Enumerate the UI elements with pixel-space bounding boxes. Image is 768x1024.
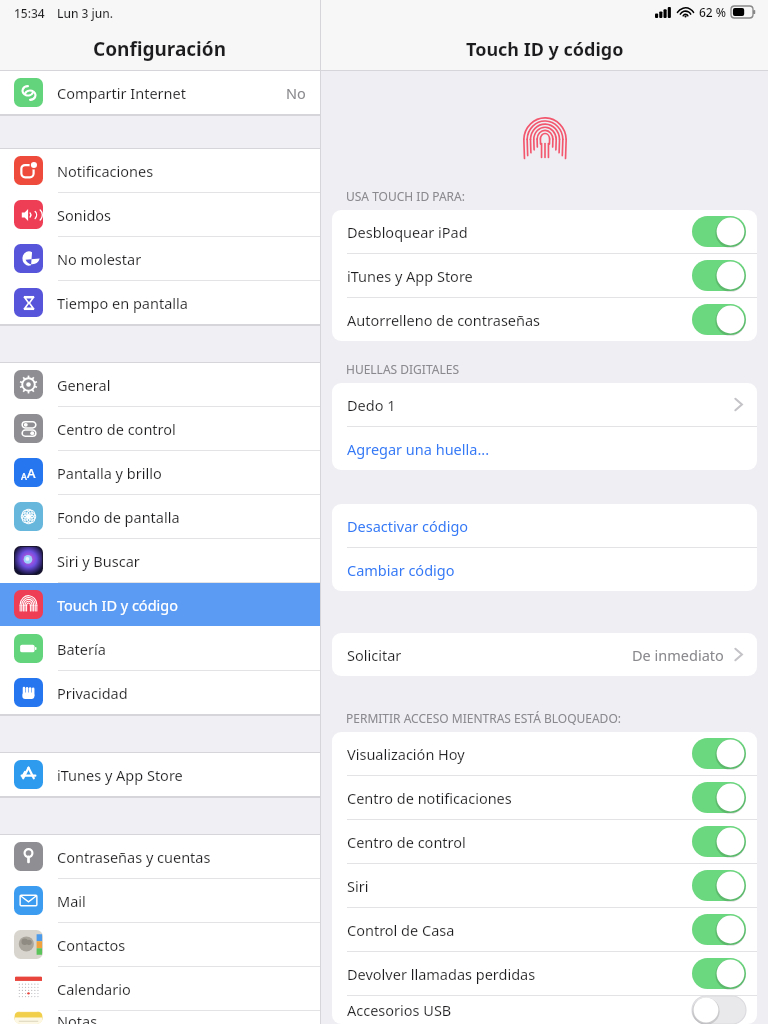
button[interactable]: Cambiar código: [332, 548, 757, 591]
button[interactable]: Centro de control: [0, 407, 320, 450]
staticText: Mail: [57, 891, 86, 911]
staticText: Pantalla y brillo: [57, 463, 162, 483]
button[interactable]: Centro de control: [332, 820, 757, 863]
staticText: Fondo de pantalla: [57, 507, 180, 527]
button[interactable]: Activado: [692, 260, 746, 291]
staticText: Siri: [347, 876, 369, 896]
staticText: Devolver llamadas perdidas: [347, 964, 536, 984]
staticText: De inmediato: [632, 645, 724, 665]
staticText: HUELLAS DIGITALES: [346, 361, 459, 377]
button[interactable]: Control de Casa: [332, 908, 757, 951]
staticText: USA TOUCH ID PARA:: [346, 188, 465, 204]
button[interactable]: Desbloquear iPad: [332, 210, 757, 253]
button[interactable]: Activado: [692, 914, 746, 945]
staticText: A: [27, 464, 36, 482]
button[interactable]: Activado: [692, 826, 746, 857]
button[interactable]: Sonidos: [0, 193, 320, 236]
button[interactable]: Agregar una huella...: [332, 427, 757, 470]
staticText: Sonidos: [57, 205, 112, 225]
staticText: Contactos: [57, 935, 126, 955]
staticText: Notificaciones: [57, 161, 154, 181]
staticText: Control de Casa: [347, 920, 455, 940]
button[interactable]: Activado: [692, 870, 746, 901]
staticText: Dedo 1: [347, 395, 396, 415]
button[interactable]: Notificaciones: [0, 149, 320, 192]
staticText: Calendario: [57, 979, 131, 999]
button[interactable]: Activado: [692, 738, 746, 769]
staticText: Centro de control: [57, 419, 176, 439]
button[interactable]: Siri y Buscar: [0, 539, 320, 582]
button[interactable]: Autorrelleno de contraseñas: [332, 298, 757, 341]
staticText: Touch ID y código: [57, 595, 178, 615]
staticText: Desbloquear iPad: [347, 222, 468, 242]
staticText: Notas: [57, 1011, 98, 1024]
staticText: Touch ID y código: [466, 37, 624, 62]
button[interactable]: Solicitar: [332, 633, 757, 676]
button[interactable]: Activado: [692, 304, 746, 335]
button[interactable]: Compartir Internet: [0, 71, 320, 114]
button[interactable]: Contraseñas y cuentas: [0, 835, 320, 878]
button[interactable]: Batería: [0, 627, 320, 670]
button[interactable]: Devolver llamadas perdidas: [332, 952, 757, 995]
button[interactable]: Desactivar código: [332, 504, 757, 547]
button[interactable]: Activado: [692, 958, 746, 989]
staticText: Autorrelleno de contraseñas: [347, 310, 541, 330]
staticText: Compartir Internet: [57, 83, 186, 103]
button[interactable]: Tiempo en pantalla: [0, 281, 320, 324]
staticText: Visualización Hoy: [347, 744, 465, 764]
staticText: 62 %: [699, 4, 727, 20]
staticText: Accesorios USB: [347, 1000, 452, 1020]
button[interactable]: iTunes y App Store: [332, 254, 757, 297]
button[interactable]: iTunes y App Store: [0, 753, 320, 796]
button[interactable]: Calendario: [0, 967, 320, 1010]
button[interactable]: Siri: [332, 864, 757, 907]
button[interactable]: Centro de notificaciones: [332, 776, 757, 819]
staticText: No molestar: [57, 249, 142, 269]
staticText: Lun 3 jun.: [57, 5, 114, 21]
staticText: A: [21, 470, 27, 482]
button[interactable]: Mail: [0, 879, 320, 922]
button[interactable]: Activado: [692, 216, 746, 247]
button[interactable]: Activado: [692, 782, 746, 813]
staticText: Centro de notificaciones: [347, 788, 512, 808]
staticText: iTunes y App Store: [347, 266, 473, 286]
staticText: Cambiar código: [347, 560, 455, 580]
staticText: Contraseñas y cuentas: [57, 847, 211, 867]
button[interactable]: Notas: [0, 1011, 320, 1024]
button[interactable]: Contactos: [0, 923, 320, 966]
staticText: Solicitar: [347, 645, 402, 665]
staticText: General: [57, 375, 111, 395]
button[interactable]: Touch ID y código: [0, 583, 320, 626]
button[interactable]: A: [0, 451, 320, 494]
button[interactable]: Visualización Hoy: [332, 732, 757, 775]
staticText: Agregar una huella...: [347, 439, 490, 459]
staticText: Centro de control: [347, 832, 466, 852]
button[interactable]: Privacidad: [0, 671, 320, 714]
staticText: No: [286, 83, 306, 103]
staticText: Privacidad: [57, 683, 128, 703]
staticText: iTunes y App Store: [57, 765, 183, 785]
staticText: Desactivar código: [347, 516, 469, 536]
button[interactable]: Desactivado: [692, 996, 746, 1024]
button[interactable]: Dedo 1: [332, 383, 757, 426]
staticText: Batería: [57, 639, 106, 659]
button[interactable]: Fondo de pantalla: [0, 495, 320, 538]
staticText: PERMITIR ACCESO MIENTRAS ESTÁ BLOQUEADO:: [346, 710, 621, 726]
staticText: Tiempo en pantalla: [57, 293, 188, 313]
button[interactable]: Accesorios USB: [332, 996, 757, 1024]
button[interactable]: No molestar: [0, 237, 320, 280]
staticText: Configuración: [93, 36, 227, 62]
staticText: 15:34: [14, 5, 45, 21]
button[interactable]: General: [0, 363, 320, 406]
staticText: Siri y Buscar: [57, 551, 140, 571]
